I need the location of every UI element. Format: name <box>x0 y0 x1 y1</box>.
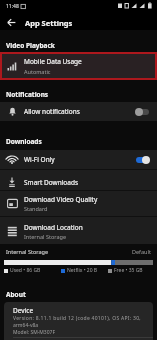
staticText: Version: 8.11.1 build 12 (code 40101), O… <box>13 315 141 322</box>
staticText: Internal Storage <box>6 248 49 255</box>
staticText: Downloads <box>6 137 42 146</box>
staticText: Download Video Quality <box>24 195 98 204</box>
staticText: App Settings <box>25 18 73 28</box>
staticText: Device <box>13 306 34 315</box>
button[interactable]: Mobile Data Usage <box>0 52 157 80</box>
staticText: Used • 86 GB <box>10 267 41 274</box>
staticText: Automatic <box>24 68 51 75</box>
staticText: Default <box>132 248 151 255</box>
staticText: Wi-Fi Only <box>24 155 55 164</box>
button[interactable] <box>0 15 22 30</box>
staticText: Netflix • 20 B <box>67 267 98 274</box>
staticText: Video Playback <box>6 41 55 50</box>
button[interactable]: Download Location <box>0 217 157 244</box>
staticText: About <box>6 290 26 299</box>
button[interactable]: Smart Downloads <box>0 170 157 190</box>
button[interactable]: Allow notifications <box>0 102 157 121</box>
button[interactable]: Wi-Fi Only <box>0 150 157 169</box>
staticText: Download Location <box>24 223 83 232</box>
staticText: Smart Downloads <box>24 178 79 187</box>
staticText: Model: SM-M307F <box>13 329 55 336</box>
staticText: Free • 35 GB <box>114 267 143 274</box>
staticText: Standard <box>24 205 48 212</box>
staticText: 11:48 <box>6 3 19 10</box>
button[interactable]: Device <box>4 302 153 340</box>
button[interactable]: Download Video Quality <box>0 191 157 216</box>
staticText: Notifications <box>6 90 49 99</box>
staticText: arm64-v8a <box>13 322 39 329</box>
staticText: Mobile Data Usage <box>24 57 82 66</box>
staticText: Internal Storage <box>24 233 67 240</box>
staticText: Allow notifications <box>24 107 80 116</box>
